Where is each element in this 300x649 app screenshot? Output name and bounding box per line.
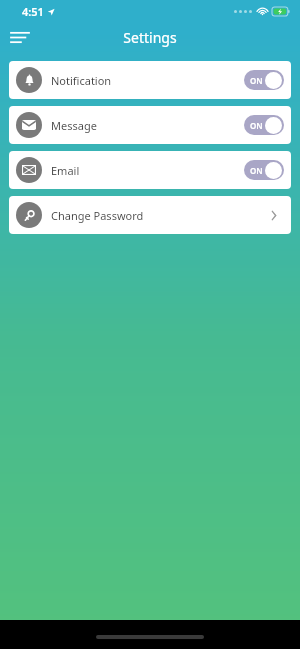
staticText: 4:51: [22, 4, 44, 19]
button[interactable]: Toggle on: [244, 160, 284, 180]
staticText: Message: [51, 118, 97, 133]
staticText: ON: [250, 120, 263, 131]
button[interactable]: Menu: [6, 23, 34, 51]
staticText: Notification: [51, 73, 112, 88]
button[interactable]: Toggle on: [244, 70, 284, 90]
staticText: Settings: [123, 28, 177, 47]
staticText: ON: [250, 75, 263, 86]
staticText: ON: [250, 165, 263, 176]
button[interactable]: Change Password: [9, 196, 291, 234]
button[interactable]: Toggle on: [244, 115, 284, 135]
button[interactable]: Open: [264, 205, 284, 225]
staticText: Email: [51, 163, 80, 178]
staticText: Change Password: [51, 208, 144, 223]
button[interactable]: Message: [9, 106, 291, 144]
button[interactable]: Notification: [9, 61, 291, 99]
button[interactable]: Email: [9, 151, 291, 189]
